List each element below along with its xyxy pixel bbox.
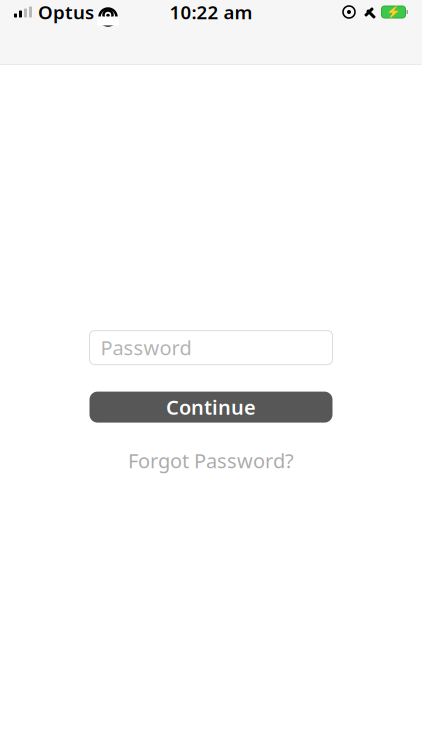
staticText: Continue	[166, 394, 256, 420]
staticText: Forgot Password?	[128, 447, 294, 474]
staticText: Optus	[38, 0, 94, 24]
staticText: 10:22 am	[169, 0, 252, 24]
staticText: Password	[100, 334, 191, 361]
staticText: ⚡	[386, 5, 401, 19]
button[interactable]: Continue	[89, 392, 332, 423]
button[interactable]: Forgot Password?	[89, 450, 332, 472]
